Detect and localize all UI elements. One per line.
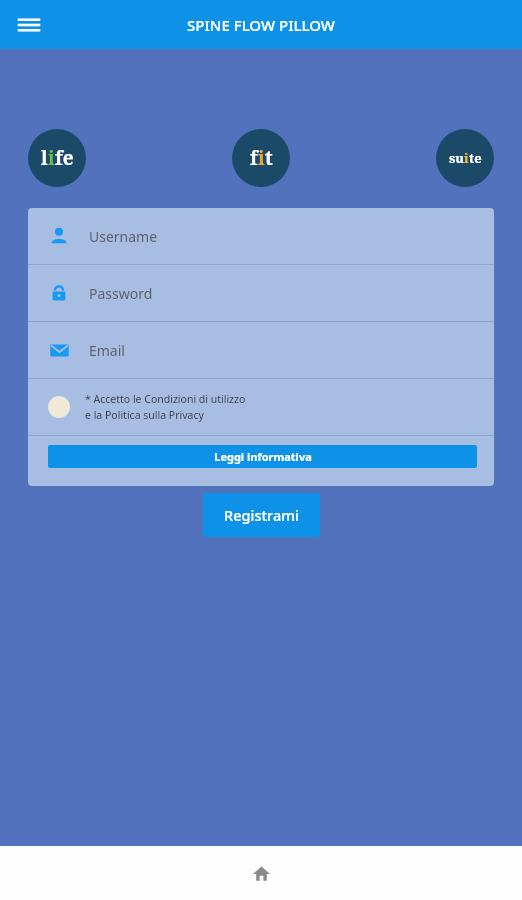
staticText: t xyxy=(265,145,273,171)
button[interactable]: Registrami xyxy=(203,493,320,537)
button[interactable]: Password xyxy=(28,265,494,321)
staticText: SPINE FLOW PILLOW xyxy=(187,15,335,35)
staticText: te xyxy=(469,149,482,167)
staticText: Email xyxy=(89,341,125,360)
button[interactable]: * Accetto le Condizioni di utilizzo xyxy=(28,379,494,435)
staticText: Username xyxy=(89,227,158,246)
staticText: l xyxy=(41,145,48,171)
staticText: Leggi informativa xyxy=(214,449,312,464)
button[interactable]: Home xyxy=(174,846,348,900)
button[interactable]: Email xyxy=(28,322,494,378)
staticText: e la Politica sulla Privacy xyxy=(85,408,204,422)
button[interactable]: Username xyxy=(28,208,494,264)
staticText: i xyxy=(48,145,55,171)
button[interactable]: life logo xyxy=(28,129,86,187)
button[interactable]: fit logo xyxy=(232,129,290,187)
staticText: fe xyxy=(55,145,74,171)
staticText: Registrami xyxy=(224,505,299,525)
staticText: i xyxy=(464,149,469,167)
staticText: f xyxy=(250,145,258,171)
staticText: Password xyxy=(89,284,153,303)
staticText: * Accetto le Condizioni di utilizzo xyxy=(85,392,246,406)
button[interactable]: suite logo xyxy=(436,129,494,187)
button[interactable]: Leggi informativa xyxy=(48,445,477,468)
staticText: su xyxy=(449,149,464,167)
staticText: i xyxy=(258,145,265,171)
button[interactable]: Open navigation menu xyxy=(10,6,48,44)
